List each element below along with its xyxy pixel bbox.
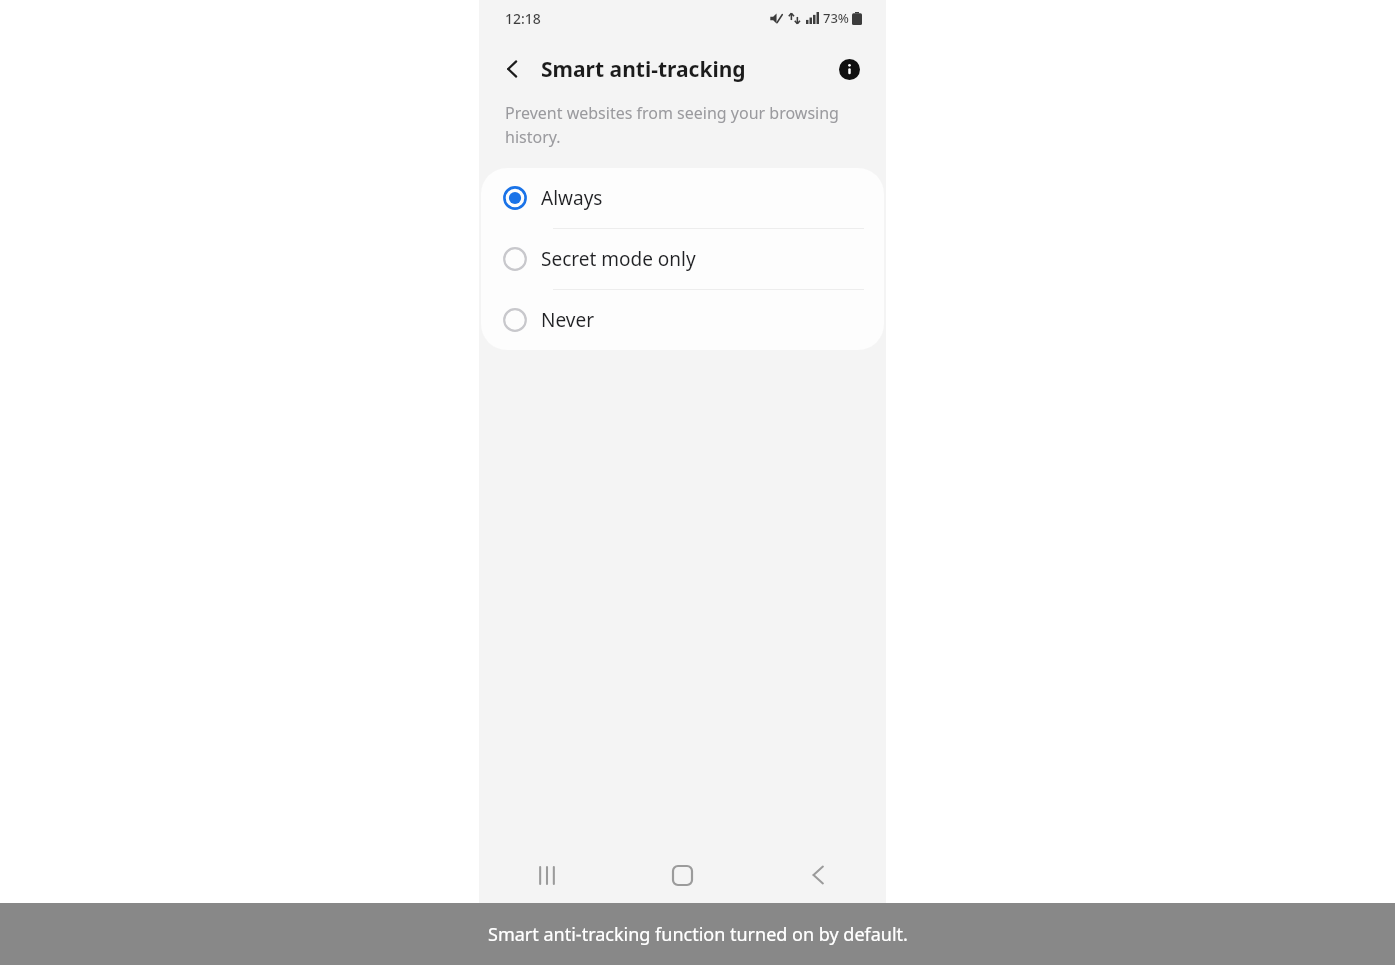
button[interactable]: Always	[481, 168, 884, 229]
staticText: Always	[541, 185, 603, 211]
button[interactable]: Information	[831, 51, 867, 87]
staticText: Prevent websites from seeing your browsi…	[505, 102, 839, 124]
staticText: Smart anti-tracking function turned on b…	[488, 922, 908, 947]
staticText: history.	[505, 126, 561, 148]
staticText: Secret mode only	[541, 246, 696, 272]
button[interactable]: Secret mode only	[481, 229, 884, 290]
staticText: 12:18	[505, 9, 541, 28]
staticText: Never	[541, 307, 594, 333]
staticText: Smart anti-tracking	[541, 55, 746, 84]
button[interactable]: Back	[491, 47, 535, 91]
button[interactable]: Recent apps	[479, 847, 614, 903]
button[interactable]: Home	[614, 847, 750, 903]
button[interactable]: Never	[481, 290, 884, 350]
button[interactable]: Back	[750, 847, 886, 903]
staticText: 73%	[823, 9, 849, 27]
